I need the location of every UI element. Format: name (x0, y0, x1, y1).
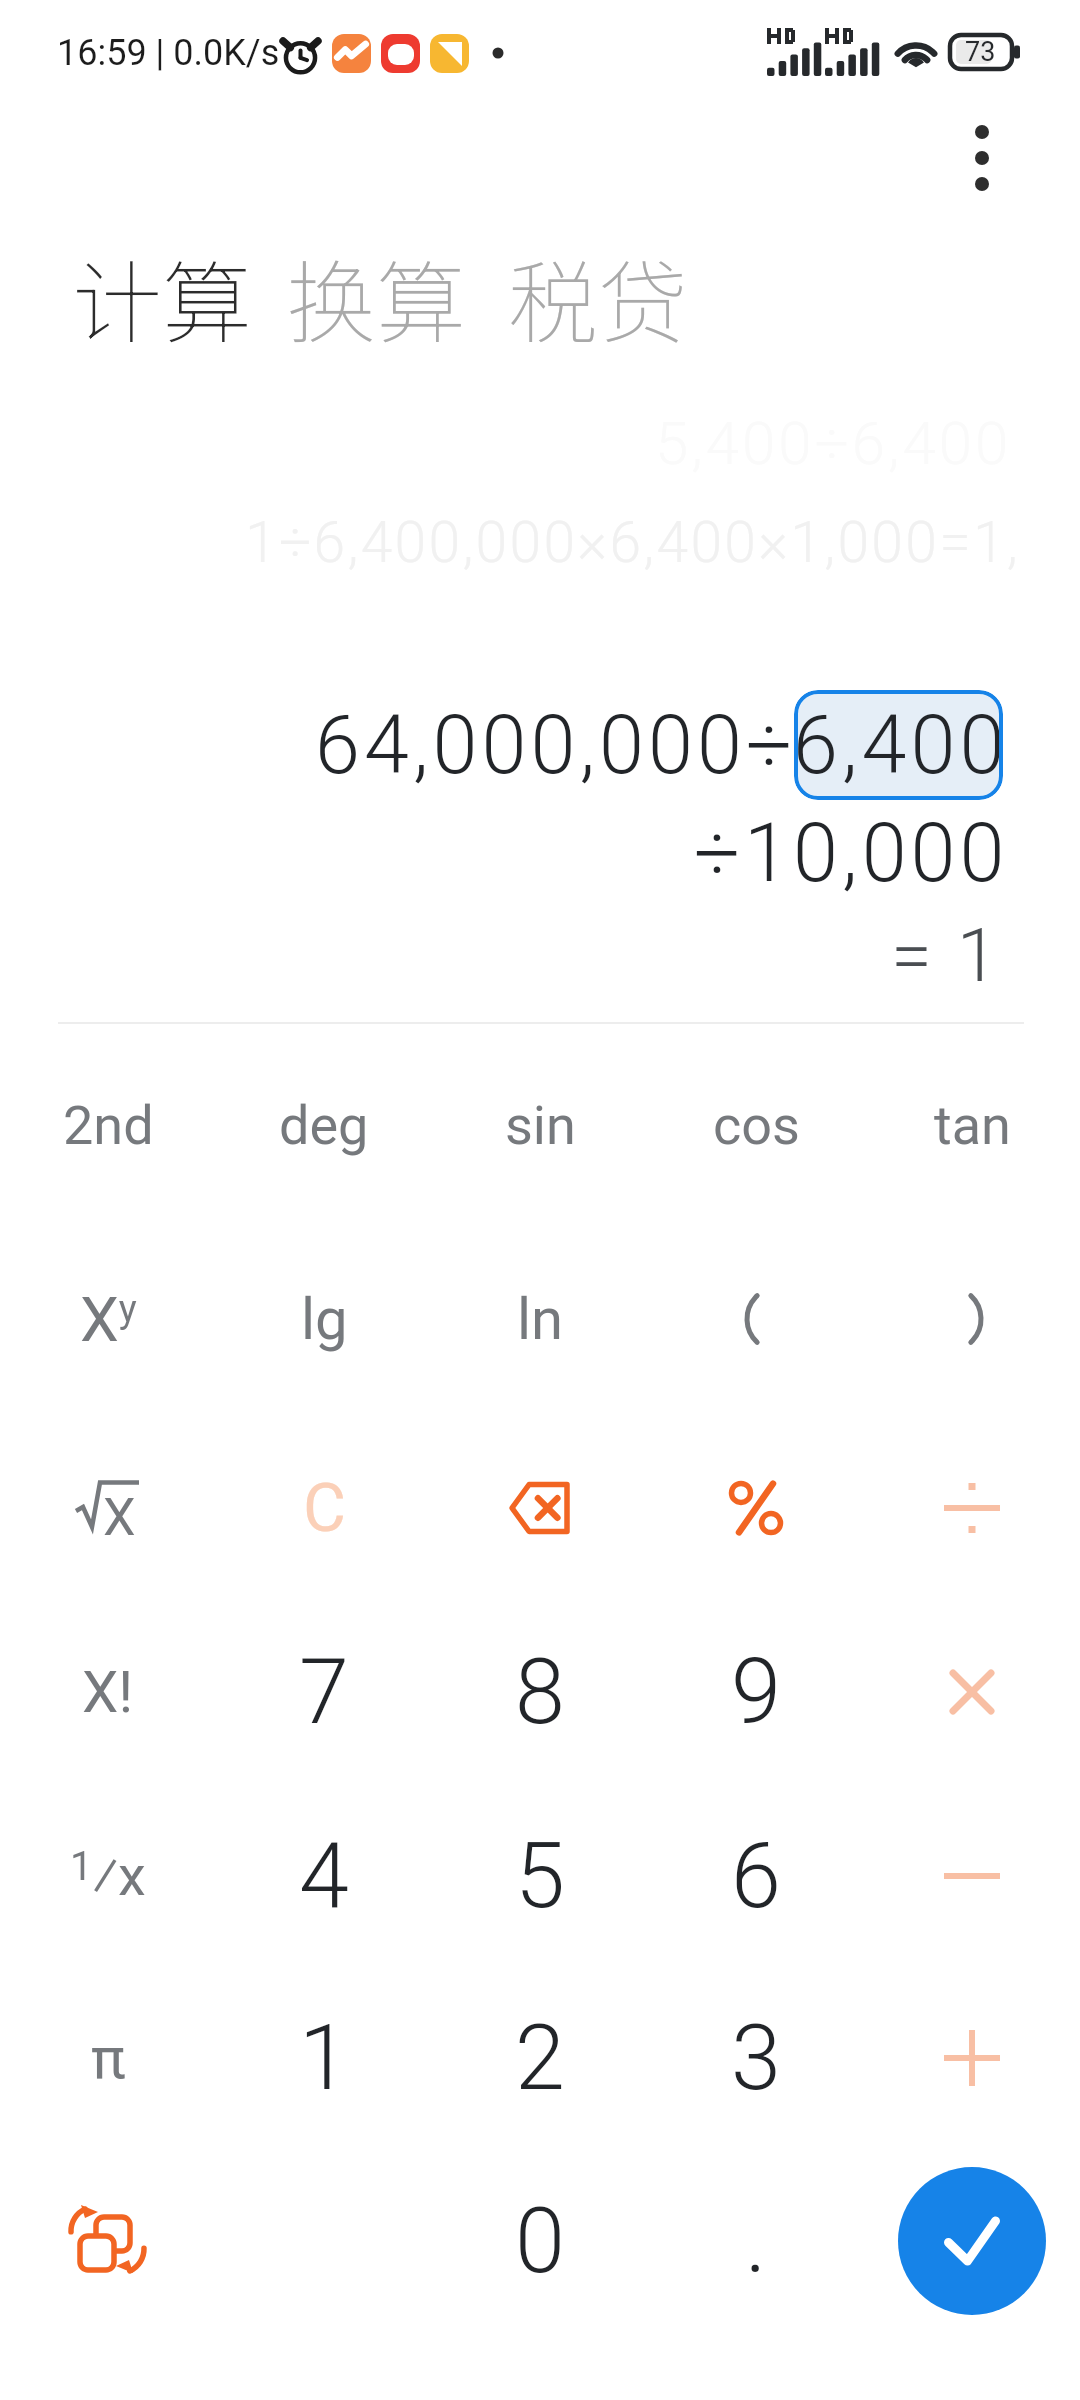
staticText: C (303, 1470, 346, 1547)
button[interactable]: lg (216, 1226, 432, 1412)
staticText: 8 (515, 1640, 565, 1745)
button[interactable]: Equals (898, 2167, 1046, 2315)
staticText: deg (279, 1094, 369, 1157)
staticText: 64,000,000÷ (315, 698, 797, 793)
button[interactable]: Plus (864, 1965, 1080, 2151)
staticText: 税贷 (508, 232, 688, 362)
staticText: π (91, 2024, 126, 2092)
button[interactable]: X to the power of Y (0, 1226, 216, 1412)
button[interactable]: cos (648, 1032, 864, 1218)
button[interactable]: 9 (648, 1599, 864, 1785)
button[interactable]: π (0, 1965, 216, 2151)
staticText: 4 (299, 1824, 349, 1929)
button[interactable]: Percent (648, 1415, 864, 1601)
button[interactable]: 6,400 (794, 690, 1003, 800)
staticText: = 1 (891, 912, 1002, 999)
staticText: 1 (299, 2006, 349, 2111)
staticText: 6,400 (794, 698, 1003, 793)
staticText: X! (82, 1658, 134, 1726)
staticText: 1⁄x (70, 1843, 146, 1909)
button[interactable]: Right parenthesis (864, 1226, 1080, 1412)
staticText: 3 (731, 2006, 781, 2111)
button[interactable]: tan (864, 1032, 1080, 1218)
button[interactable]: sin (432, 1032, 648, 1218)
button[interactable]: 8 (432, 1599, 648, 1785)
button[interactable]: 计算 (72, 232, 252, 362)
staticText: tan (934, 1094, 1011, 1157)
staticText: ln (517, 1285, 564, 1353)
button[interactable]: ln (432, 1226, 648, 1412)
button[interactable]: 3 (648, 1965, 864, 2151)
staticText: Xy (80, 1283, 137, 1356)
staticText: 计算 (72, 232, 252, 362)
staticText: sin (505, 1094, 576, 1157)
staticText: 7 (299, 1640, 349, 1745)
button[interactable]: 0 (432, 2148, 648, 2334)
button[interactable]: . (648, 2148, 864, 2334)
button[interactable]: 换算 (286, 232, 466, 362)
button[interactable]: X! (0, 1599, 216, 1785)
button[interactable]: Divide (864, 1415, 1080, 1601)
button[interactable]: Unit convert (0, 2148, 216, 2334)
button[interactable]: 4 (216, 1783, 432, 1969)
button[interactable]: Multiply (864, 1599, 1080, 1785)
staticText: . (745, 2189, 767, 2294)
button[interactable]: deg (216, 1032, 432, 1218)
staticText: 2nd (63, 1094, 154, 1157)
button[interactable]: Left parenthesis (648, 1226, 864, 1412)
button[interactable]: Minus (864, 1783, 1080, 1969)
staticText: 6 (731, 1824, 781, 1929)
staticText: 73 (965, 36, 996, 68)
button[interactable]: 2 (432, 1965, 648, 2151)
staticText: 16:59 | 0.0K/s (57, 32, 280, 74)
button[interactable]: 2nd (0, 1032, 216, 1218)
button[interactable]: 5 (432, 1783, 648, 1969)
button[interactable]: 6 (648, 1783, 864, 1969)
staticText: cos (713, 1094, 800, 1157)
button[interactable]: 7 (216, 1599, 432, 1785)
button[interactable]: More options (932, 108, 1032, 208)
button[interactable]: Square root (0, 1415, 216, 1601)
staticText: lg (301, 1285, 348, 1353)
staticText: 2 (515, 2006, 565, 2111)
button[interactable]: C (216, 1415, 432, 1601)
staticText: 5 (515, 1824, 565, 1929)
staticText: X (103, 1487, 136, 1543)
button[interactable]: One over x (0, 1783, 216, 1969)
staticText: 换算 (286, 232, 466, 362)
button[interactable]: 税贷 (508, 232, 688, 362)
button[interactable]: 1 (216, 1965, 432, 2151)
staticText: 1÷6,400,000×6,400×1,000=1, (245, 509, 1021, 576)
staticText: 0 (515, 2189, 565, 2294)
staticText: ÷10,000 (694, 806, 1009, 901)
staticText: 9 (731, 1640, 781, 1745)
button[interactable]: Delete (432, 1415, 648, 1601)
